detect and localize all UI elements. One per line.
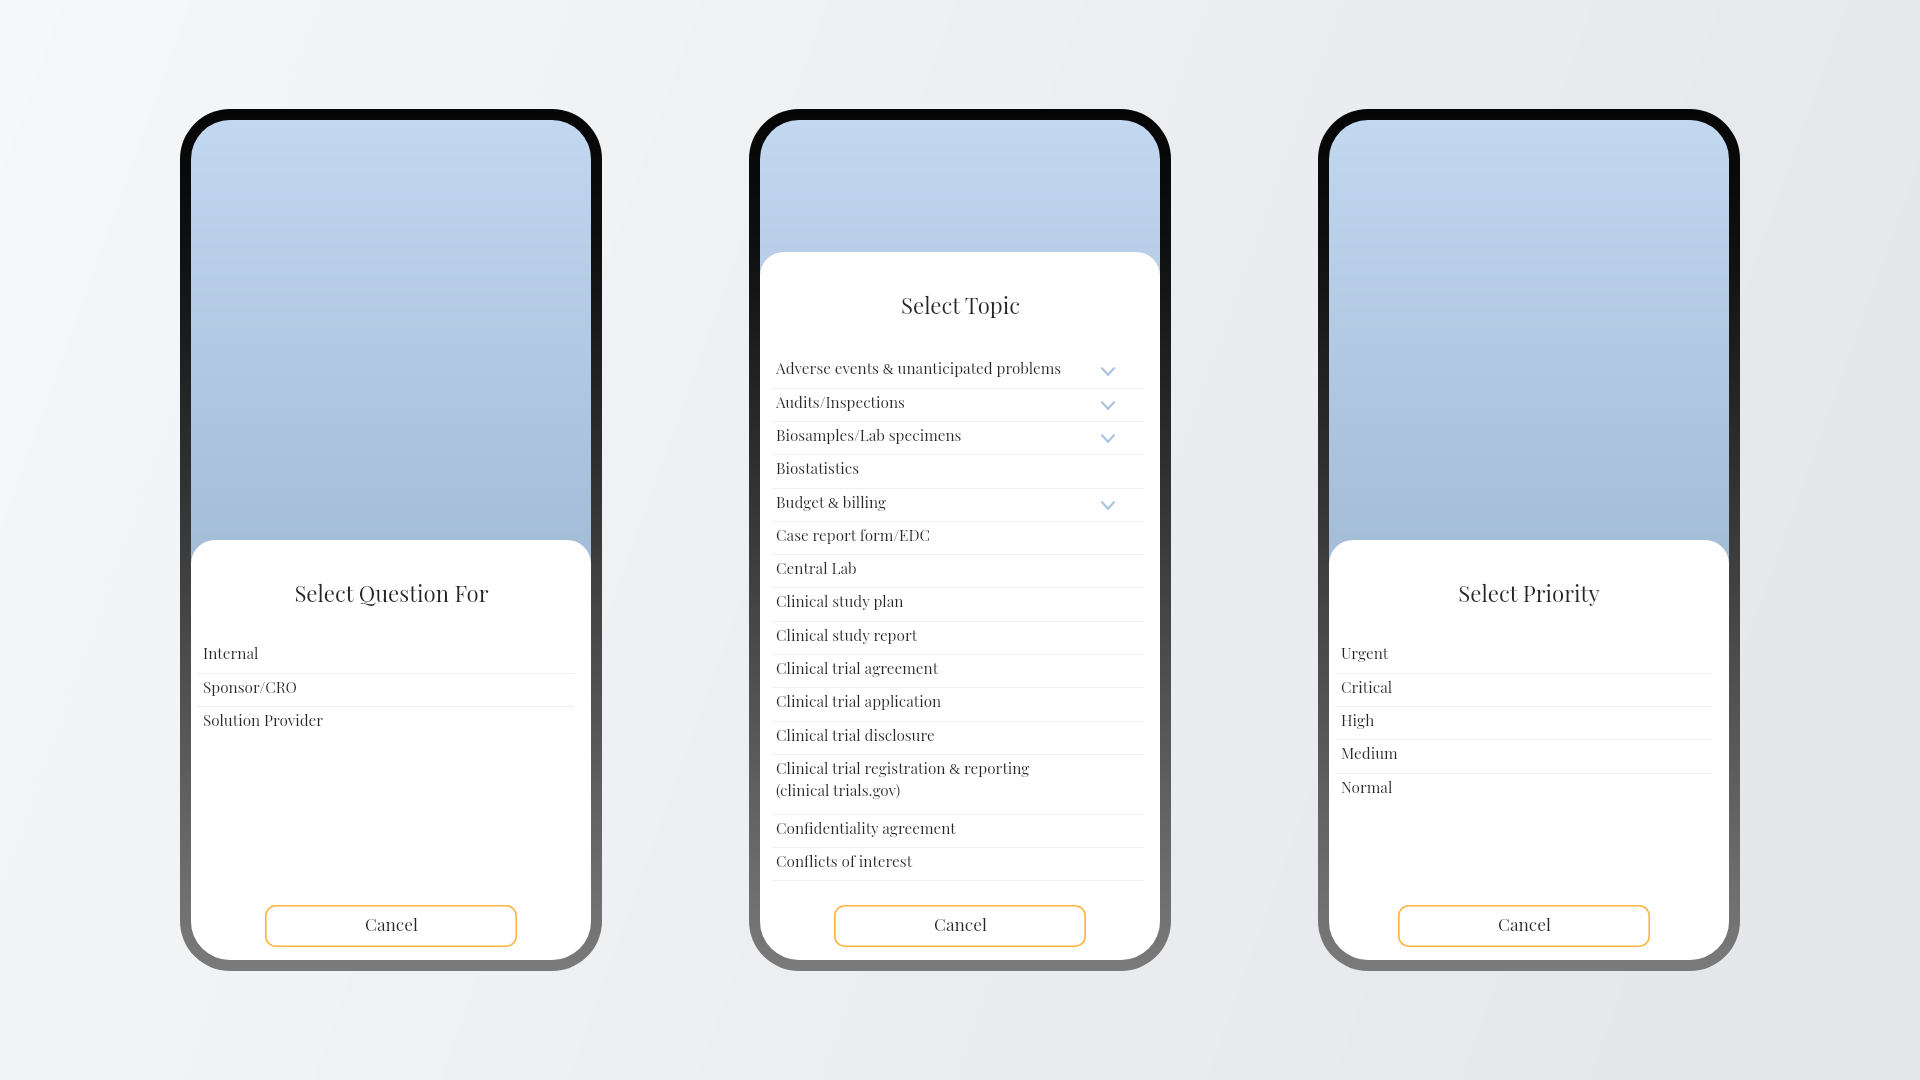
staticText: Select Question For — [294, 578, 489, 608]
button[interactable]: Biosamples/Lab specimens — [760, 421, 1160, 454]
button[interactable]: Clinical trial registration & reporting … — [760, 754, 1160, 814]
button[interactable]: Internal — [191, 639, 591, 672]
other: Expand — [1101, 434, 1115, 443]
button[interactable]: Sponsor/CRO — [191, 673, 591, 706]
staticText: Budget & billing — [776, 491, 1101, 511]
other: Expand — [1101, 367, 1115, 376]
staticText: Case report form/EDC — [776, 524, 1115, 544]
button[interactable]: Clinical trial disclosure — [760, 721, 1160, 754]
staticText: Clinical study report — [776, 624, 1115, 644]
other: Expand — [1101, 401, 1115, 410]
button[interactable]: Budget & billing — [760, 488, 1160, 521]
button[interactable]: Critical — [1329, 673, 1729, 706]
staticText: High — [1341, 709, 1688, 729]
staticText: Cancel — [934, 912, 987, 935]
staticText: Cancel — [365, 912, 418, 935]
button[interactable]: Normal — [1329, 773, 1729, 806]
button[interactable]: Clinical trial application — [760, 687, 1160, 720]
staticText: Confidentiality agreement — [776, 817, 1115, 837]
staticText: Central Lab — [776, 557, 1115, 577]
staticText: Biostatistics — [776, 457, 1115, 477]
button[interactable]: Audits/Inspections — [760, 388, 1160, 421]
staticText: Adverse events & unanticipated problems — [776, 357, 1101, 377]
staticText: Internal — [203, 642, 550, 662]
staticText: Clinical trial application — [776, 690, 1115, 710]
other: Expand — [1101, 501, 1115, 510]
staticText: Clinical trial disclosure — [776, 724, 1115, 744]
staticText: Audits/Inspections — [776, 391, 1101, 411]
staticText: Normal — [1341, 776, 1688, 796]
button[interactable]: Central Lab — [760, 554, 1160, 587]
staticText: Medium — [1341, 742, 1688, 762]
staticText: Critical — [1341, 676, 1688, 696]
button[interactable]: Cancel — [834, 905, 1086, 947]
staticText: Select Topic — [901, 290, 1020, 320]
staticText: Clinical study plan — [776, 590, 1115, 610]
staticText: Select Priority — [1458, 578, 1600, 608]
button[interactable]: Solution Provider — [191, 706, 591, 739]
button[interactable]: Case report form/EDC — [760, 521, 1160, 554]
staticText: Urgent — [1341, 642, 1688, 662]
button[interactable]: Confidentiality agreement — [760, 814, 1160, 847]
button[interactable]: Clinical study report — [760, 621, 1160, 654]
button[interactable]: Conflicts of interest — [760, 847, 1160, 880]
button[interactable]: Clinical study plan — [760, 587, 1160, 620]
button[interactable]: Urgent — [1329, 639, 1729, 672]
staticText: Biosamples/Lab specimens — [776, 424, 1101, 444]
button[interactable]: High — [1329, 706, 1729, 739]
button[interactable]: Adverse events & unanticipated problems — [760, 354, 1160, 387]
staticText: Clinical trial registration & reporting … — [776, 757, 1115, 800]
staticText: Cancel — [1498, 912, 1551, 935]
button[interactable]: Cancel — [1398, 905, 1650, 947]
staticText: Conflicts of interest — [776, 850, 1115, 870]
staticText: Sponsor/CRO — [203, 676, 550, 696]
staticText: Clinical trial agreement — [776, 657, 1115, 677]
staticText: Solution Provider — [203, 709, 550, 729]
button[interactable]: Cancel — [265, 905, 517, 947]
button[interactable]: Biostatistics — [760, 454, 1160, 487]
button[interactable]: Clinical trial agreement — [760, 654, 1160, 687]
button[interactable]: Medium — [1329, 739, 1729, 772]
